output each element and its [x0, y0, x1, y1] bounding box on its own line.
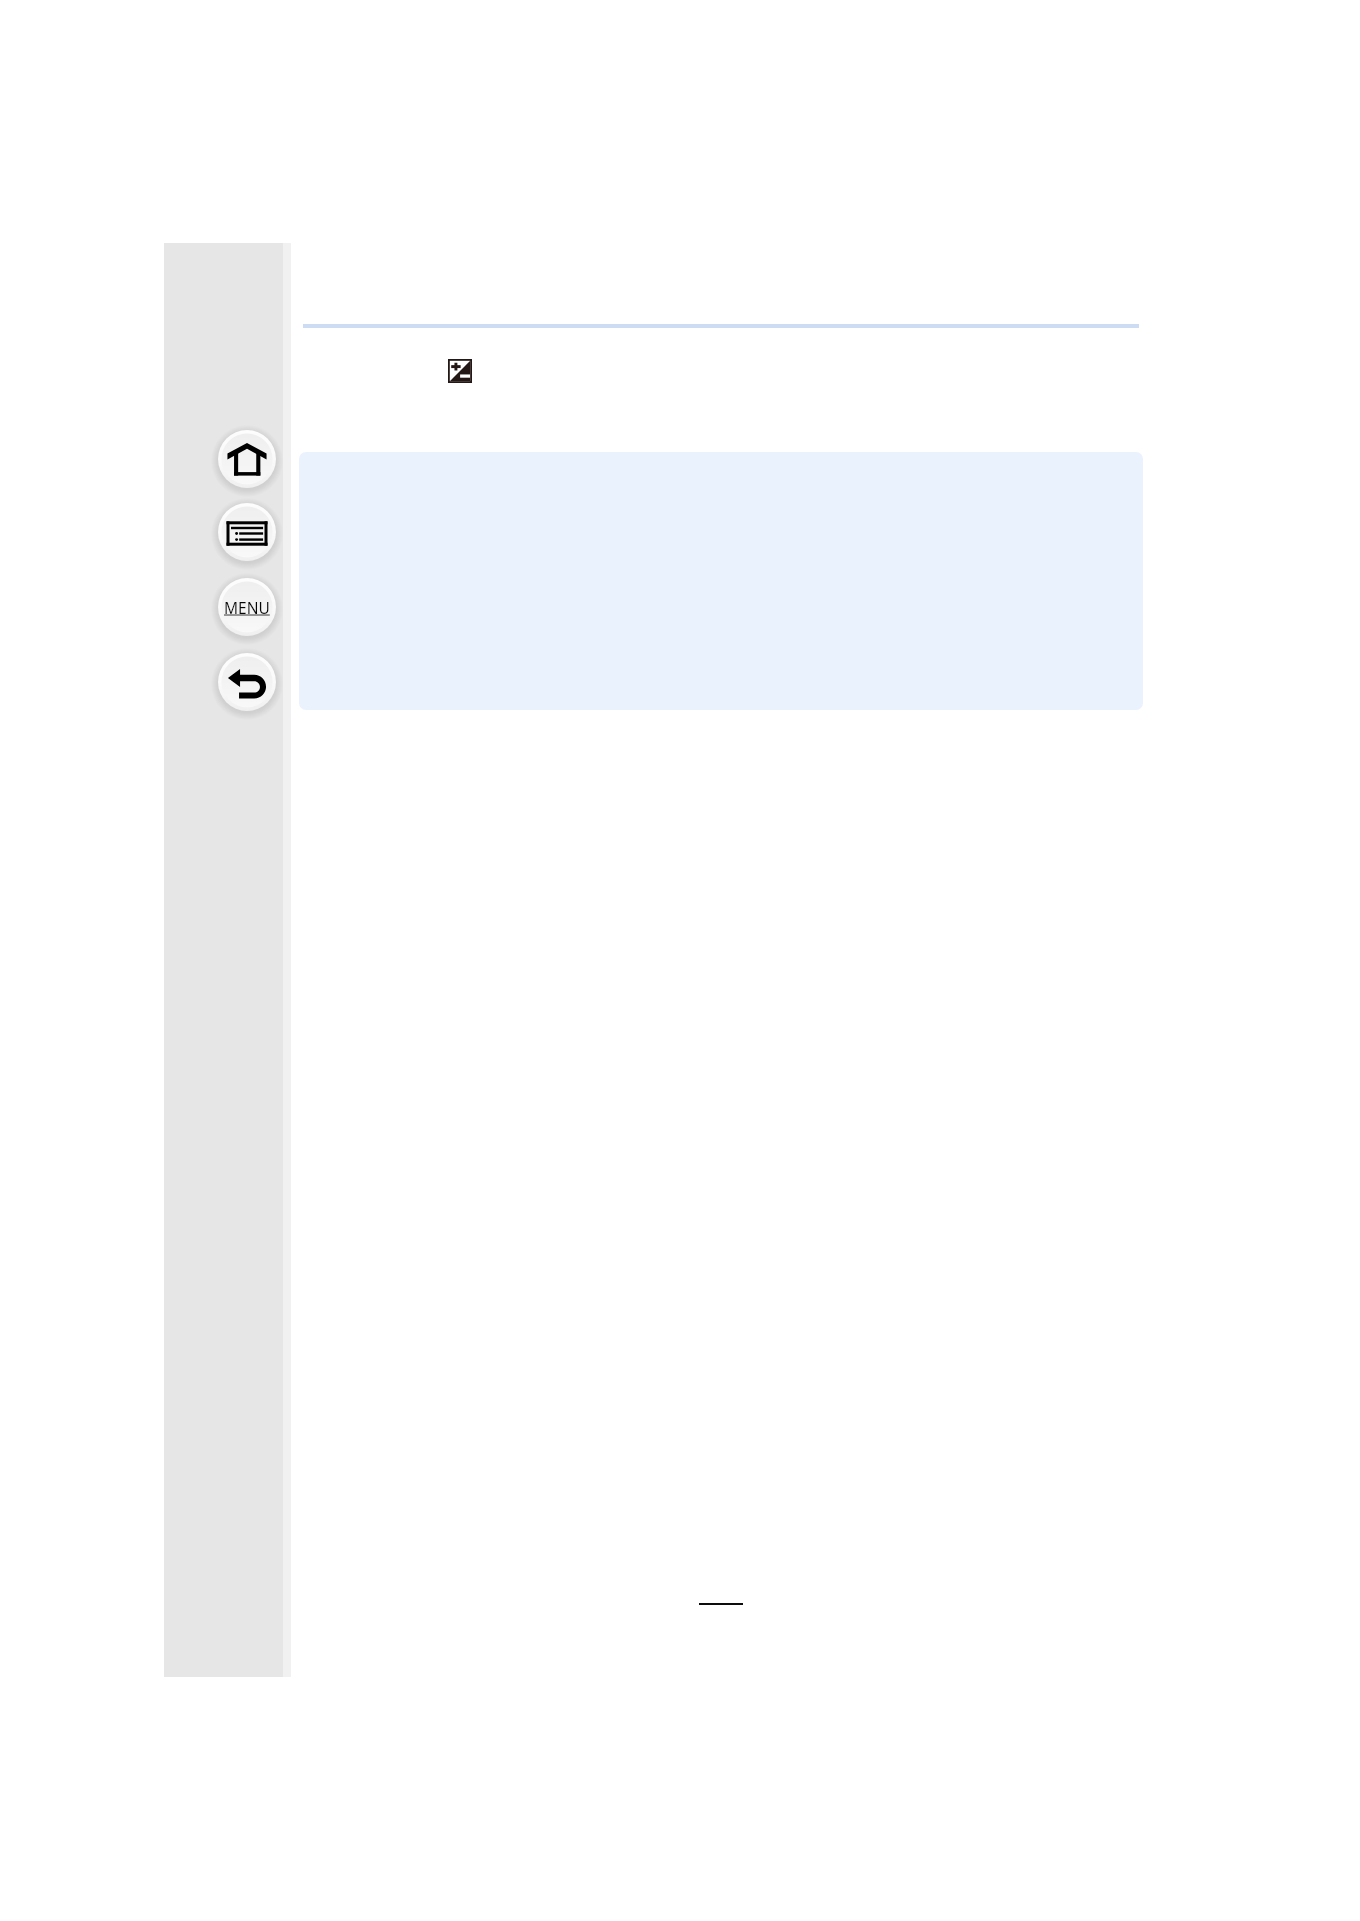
button[interactable]: Home [216, 428, 278, 490]
button[interactable]: MENU [216, 576, 278, 638]
button[interactable]: Display [216, 501, 278, 563]
button[interactable]: Back [216, 651, 278, 713]
staticText: MENU [224, 597, 270, 618]
